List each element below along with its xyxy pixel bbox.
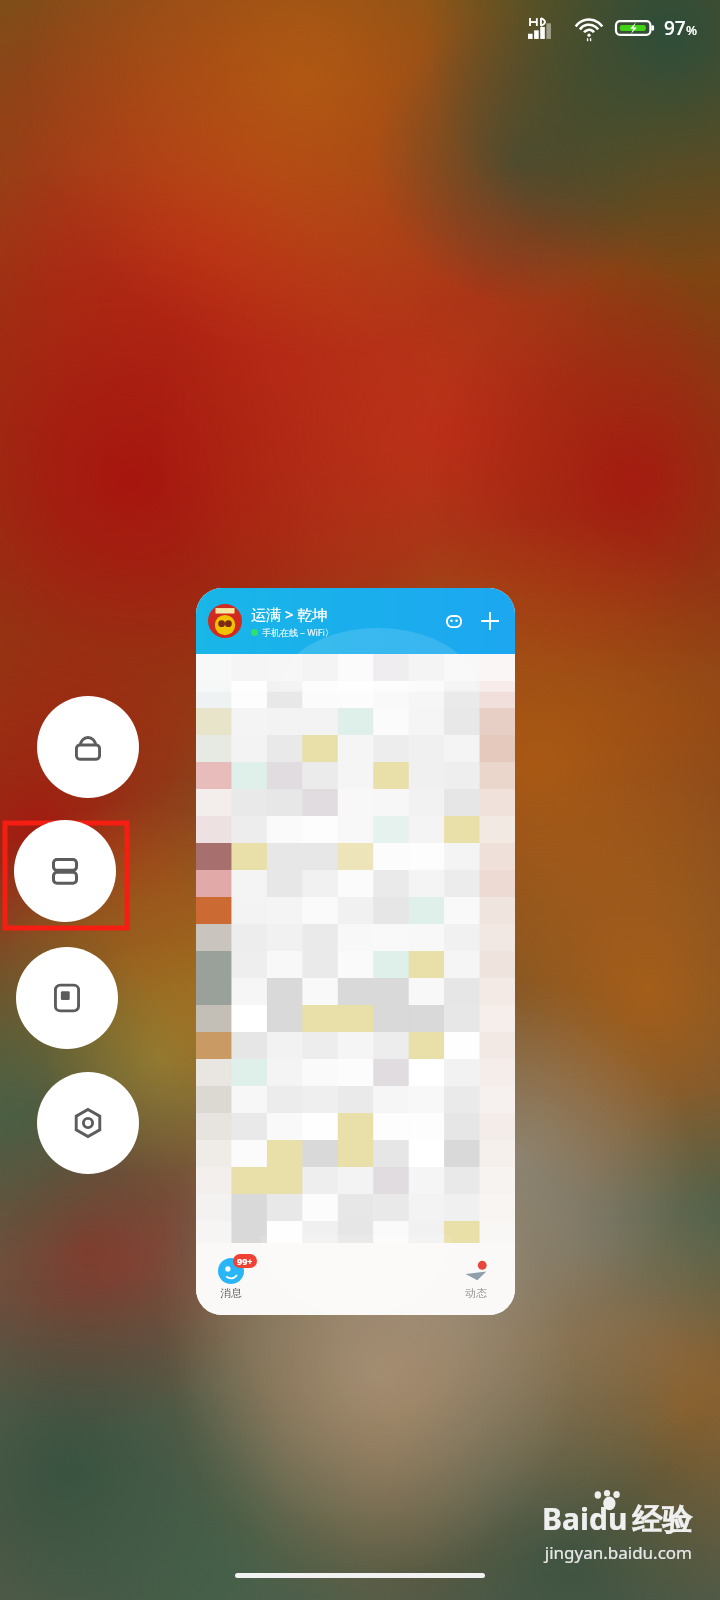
button[interactable]: 运满 > 乾坤 <box>196 588 515 1315</box>
button[interactable]: Add <box>477 608 503 634</box>
button[interactable]: Scan <box>441 608 467 634</box>
staticText: 97 <box>664 15 686 41</box>
staticText: du <box>589 1498 628 1539</box>
button[interactable]: App info <box>37 1072 139 1174</box>
staticText: % <box>686 21 698 39</box>
button[interactable]: Lock app <box>37 696 139 798</box>
staticText: 99+ <box>237 1255 253 1267</box>
staticText: jingyan.baidu.com <box>544 1541 692 1564</box>
staticText: 动态 <box>465 1286 487 1300</box>
button[interactable]: 99+ <box>218 1258 244 1300</box>
button[interactable]: 动态 <box>463 1258 489 1300</box>
button[interactable]: Floating window <box>16 947 118 1049</box>
staticText: 运满 > 乾坤 <box>251 604 328 624</box>
staticText: 手机在线 – WiFi〉 <box>262 626 334 638</box>
staticText: 经验 <box>632 1501 692 1539</box>
staticText: Bai <box>542 1498 589 1539</box>
staticText: 消息 <box>220 1286 242 1300</box>
button[interactable]: Split screen <box>14 820 116 922</box>
